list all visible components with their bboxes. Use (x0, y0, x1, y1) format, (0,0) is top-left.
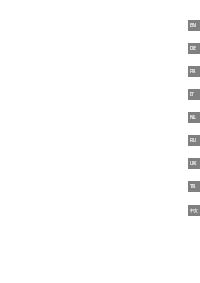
button[interactable]: EN (0, 14, 200, 37)
staticText: UK (190, 160, 196, 167)
button[interactable]: TR (0, 175, 200, 198)
button[interactable]: IT (0, 83, 200, 106)
button[interactable]: 中文 (0, 199, 200, 222)
staticText: RU (190, 137, 196, 144)
staticText: DE (190, 45, 196, 52)
staticText: EN (190, 22, 196, 29)
button[interactable]: UK (0, 152, 200, 175)
staticText: TR (190, 183, 195, 190)
button[interactable]: NL (0, 106, 200, 129)
staticText: FR (190, 68, 195, 75)
staticText: 中文 (190, 208, 198, 213)
button[interactable]: DE (0, 37, 200, 60)
button[interactable]: RU (0, 129, 200, 152)
button[interactable]: FR (0, 60, 200, 83)
staticText: IT (190, 91, 194, 98)
staticText: NL (190, 114, 196, 121)
